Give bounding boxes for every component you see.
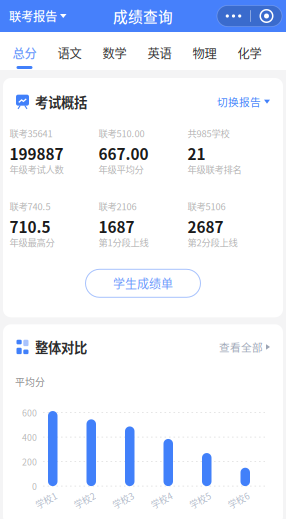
staticText: 切换报告 bbox=[217, 94, 261, 109]
staticText: 学校4 bbox=[150, 494, 173, 506]
staticText: 联考35641 bbox=[9, 126, 52, 140]
staticText: 联考510.00 bbox=[98, 126, 144, 140]
staticText: 667.00 bbox=[98, 142, 148, 164]
staticText: 年级最高分 bbox=[9, 235, 54, 249]
staticText: 21 bbox=[187, 142, 205, 164]
staticText: 共985学校 bbox=[187, 126, 229, 140]
staticText: 600 bbox=[22, 406, 37, 419]
staticText: 考试概括 bbox=[35, 92, 87, 111]
staticText: 总分 bbox=[12, 44, 36, 62]
staticText: 学校6 bbox=[227, 494, 250, 506]
staticText: 1687 bbox=[98, 215, 134, 237]
staticText: 学生成绩单 bbox=[113, 275, 173, 292]
button[interactable]: More options bbox=[217, 5, 282, 26]
staticText: 语文 bbox=[57, 44, 81, 62]
staticText: 英语 bbox=[147, 44, 171, 62]
button[interactable]: 语文 bbox=[57, 32, 82, 70]
staticText: 学校3 bbox=[112, 494, 135, 506]
staticText: 学校2 bbox=[73, 494, 96, 506]
button[interactable]: 物理 bbox=[192, 32, 217, 70]
staticText: 年级联考排名 bbox=[187, 162, 241, 176]
staticText: 第1分段上线 bbox=[98, 235, 148, 249]
button[interactable]: 总分 bbox=[12, 32, 37, 70]
staticText: 0 bbox=[32, 480, 37, 492]
staticText: 2687 bbox=[187, 215, 223, 237]
staticText: 400 bbox=[22, 431, 37, 443]
button[interactable]: 切换报告 bbox=[217, 94, 270, 109]
staticText: 平均分 bbox=[15, 374, 45, 389]
staticText: 化学 bbox=[237, 44, 261, 62]
staticText: 联考5106 bbox=[187, 199, 225, 213]
staticText: 联考740.5 bbox=[9, 199, 50, 213]
staticText: 成绩查询 bbox=[113, 5, 173, 27]
button[interactable]: 联考报告 bbox=[0, 0, 74, 32]
staticText: 学校1 bbox=[35, 494, 58, 506]
staticText: 物理 bbox=[192, 44, 216, 62]
staticText: 学校5 bbox=[189, 494, 212, 506]
button[interactable]: 数学 bbox=[102, 32, 127, 70]
button[interactable]: 学生成绩单 bbox=[85, 269, 200, 297]
staticText: 第2分段上线 bbox=[187, 235, 237, 249]
staticText: 200 bbox=[22, 455, 37, 468]
staticText: 联考报告 bbox=[9, 7, 57, 25]
staticText: 年级考试人数 bbox=[9, 162, 63, 176]
button[interactable]: 英语 bbox=[147, 32, 172, 70]
staticText: 199887 bbox=[9, 142, 63, 164]
button[interactable]: 查看全部 bbox=[219, 339, 270, 355]
staticText: 年级平均分 bbox=[98, 162, 143, 176]
button[interactable]: 化学 bbox=[237, 32, 262, 70]
staticText: 数学 bbox=[102, 44, 126, 62]
staticText: 整体对比 bbox=[35, 337, 87, 357]
staticText: 710.5 bbox=[9, 215, 50, 237]
staticText: 查看全部 bbox=[219, 339, 263, 355]
staticText: 联考2106 bbox=[98, 199, 136, 213]
